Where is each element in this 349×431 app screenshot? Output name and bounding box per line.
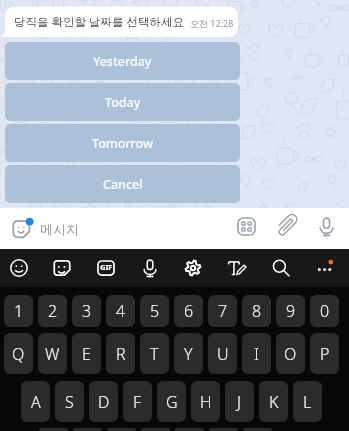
staticText: 2 [48, 300, 58, 322]
button[interactable]: C [107, 428, 136, 431]
button[interactable]: U [208, 333, 237, 374]
button[interactable]: V [141, 428, 170, 431]
button[interactable]: 5 [140, 295, 169, 327]
staticText: Q [12, 343, 25, 365]
button[interactable]: 2 [38, 295, 67, 327]
staticText: L [303, 391, 312, 413]
staticText: 9 [286, 300, 296, 322]
button[interactable]: 8 [242, 295, 271, 327]
staticText: 당직을 확인할 날짜를 선택하세요 [14, 14, 184, 30]
staticText: Tomorrow [92, 135, 154, 152]
staticText: 3 [82, 300, 92, 322]
button[interactable]: N [209, 428, 238, 431]
staticText: 1 [14, 300, 24, 322]
staticText: 5 [150, 300, 160, 322]
button[interactable]: F [123, 381, 152, 422]
button[interactable]: J [225, 381, 254, 422]
button[interactable]: Handwriting [219, 249, 255, 287]
staticText: Y [184, 343, 193, 365]
staticText: K [269, 391, 279, 413]
staticText: U [217, 343, 229, 365]
button[interactable]: 4 [106, 295, 135, 327]
button[interactable]: E [72, 333, 101, 374]
button[interactable]: Tomorrow [5, 124, 240, 162]
staticText: 7 [218, 300, 228, 322]
staticText: 메시지 [40, 221, 79, 237]
button[interactable]: Voice message [311, 211, 342, 242]
staticText: GIF [100, 262, 113, 272]
staticText: 오전 12:28 [190, 17, 234, 29]
button[interactable]: Voice input [132, 249, 168, 287]
button[interactable]: Today [5, 83, 240, 121]
button[interactable]: L [293, 381, 322, 422]
button[interactable]: K [259, 381, 288, 422]
button[interactable]: D [89, 381, 118, 422]
button[interactable]: Attach file [272, 211, 303, 242]
staticText: Today [105, 94, 141, 111]
staticText: S [65, 391, 74, 413]
button[interactable]: 0 [310, 295, 339, 327]
button[interactable]: I [242, 333, 271, 374]
staticText: I [254, 343, 259, 365]
button[interactable]: Apps [231, 211, 262, 242]
button[interactable]: 6 [174, 295, 203, 327]
button[interactable]: More [306, 249, 342, 287]
staticText: R [116, 343, 126, 365]
button[interactable]: GIF [88, 249, 124, 287]
button[interactable]: 7 [208, 295, 237, 327]
button[interactable]: Cancel [5, 165, 240, 203]
staticText: H [200, 391, 212, 413]
button[interactable]: Sticker [44, 249, 80, 287]
staticText: T [150, 343, 159, 365]
staticText: O [284, 343, 297, 365]
staticText: G [166, 391, 178, 413]
button[interactable]: A [21, 381, 50, 422]
button[interactable]: W [38, 333, 67, 374]
button[interactable]: Stickers [5, 212, 39, 246]
staticText: D [98, 391, 110, 413]
button[interactable]: P [310, 333, 339, 374]
button[interactable]: 1 [4, 295, 33, 327]
staticText: P [320, 343, 330, 365]
button[interactable]: O [276, 333, 305, 374]
staticText: Cancel [103, 176, 143, 193]
button[interactable]: M [243, 428, 272, 431]
staticText: W [45, 343, 60, 365]
button[interactable]: Settings [175, 249, 211, 287]
button[interactable]: Emoji [1, 249, 37, 287]
staticText: 8 [252, 300, 262, 322]
button[interactable]: Y [174, 333, 203, 374]
staticText: 4 [116, 300, 126, 322]
staticText: J [237, 391, 242, 413]
staticText: A [31, 391, 41, 413]
staticText: Yesterday [93, 53, 152, 70]
staticText: E [82, 343, 91, 365]
button[interactable]: Z [39, 428, 68, 431]
button[interactable]: 9 [276, 295, 305, 327]
button[interactable]: 메시지 [40, 208, 230, 249]
staticText: F [133, 391, 142, 413]
button[interactable]: T [140, 333, 169, 374]
button[interactable]: S [55, 381, 84, 422]
staticText: 6 [184, 300, 194, 322]
button[interactable]: B [175, 428, 204, 431]
button[interactable]: Search [263, 249, 299, 287]
button[interactable]: G [157, 381, 186, 422]
button[interactable]: Q [4, 333, 33, 374]
button[interactable]: H [191, 381, 220, 422]
button[interactable]: Yesterday [5, 42, 240, 80]
button[interactable]: R [106, 333, 135, 374]
button[interactable]: 3 [72, 295, 101, 327]
button[interactable]: X [73, 428, 102, 431]
staticText: 0 [320, 300, 330, 322]
